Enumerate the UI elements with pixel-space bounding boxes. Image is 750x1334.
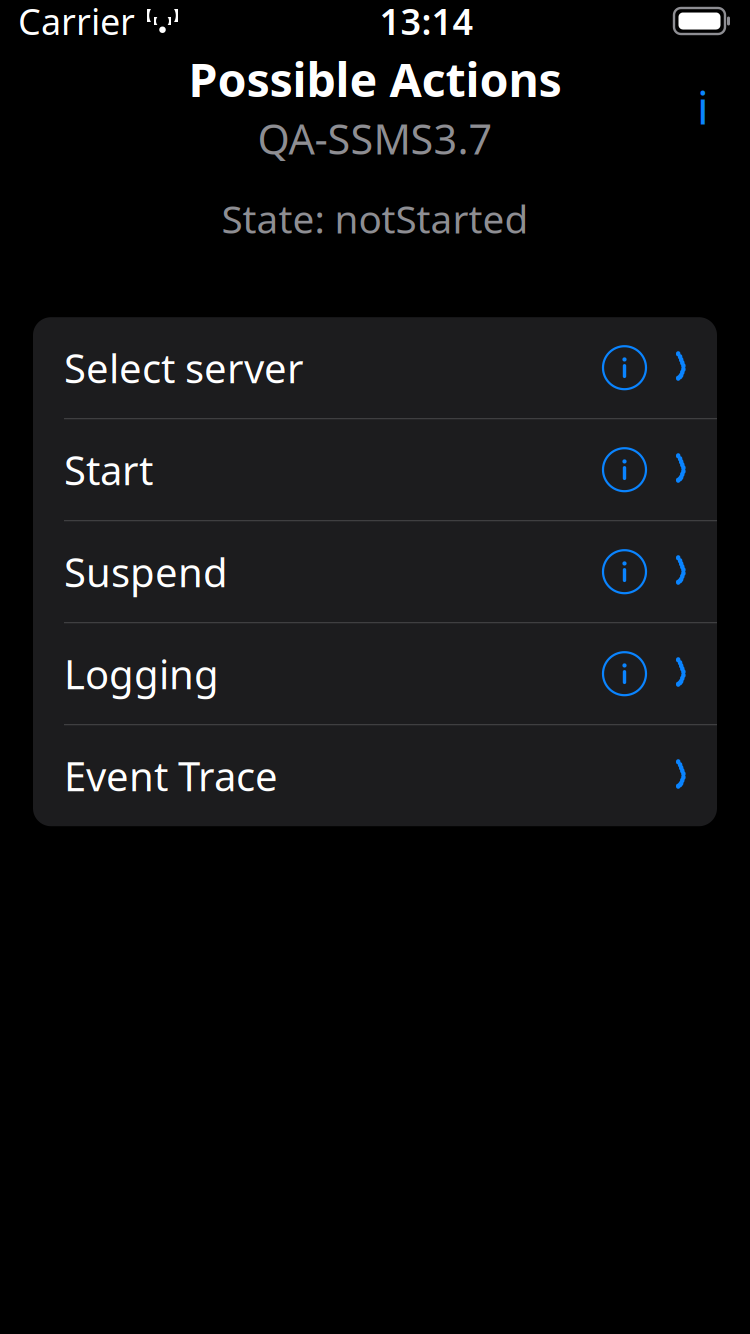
staticText: Event Trace [64,749,278,802]
staticText: QA-SSMS3.7 [257,111,492,166]
button[interactable]: Event Trace [33,725,717,826]
button[interactable]: Start [33,419,717,520]
staticText: Select server [64,341,304,394]
staticText: 13:14 [379,0,473,45]
staticText: State: notStarted [221,193,528,244]
button[interactable]: Suspend [33,521,717,622]
button[interactable]: Information [672,76,734,138]
staticText: Possible Actions [188,48,561,110]
button[interactable]: Logging [33,623,717,724]
staticText: i [697,77,709,137]
button[interactable]: Select server [33,317,717,418]
staticText: Suspend [64,545,228,598]
staticText: Start [64,443,153,496]
staticText: Logging [64,647,219,700]
staticText: Carrier [18,0,135,45]
